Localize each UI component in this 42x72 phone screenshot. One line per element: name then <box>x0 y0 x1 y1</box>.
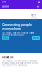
staticText: LOGO <box>2 5 9 8</box>
button[interactable]: Learn more <box>2 36 9 40</box>
button[interactable]: Menu <box>36 4 40 8</box>
button[interactable]: Contact <box>32 36 40 40</box>
staticText: ▮▮ <box>38 1 40 3</box>
staticText: Learn more <box>3 36 8 40</box>
staticText: Contact <box>32 37 39 39</box>
staticText: Sign in <box>31 14 36 16</box>
staticText: We design, build and maintain reliable n… <box>2 32 34 36</box>
staticText: 9:41 <box>2 1 6 3</box>
staticText: Connecting people everywhere <box>2 23 32 31</box>
staticText: The Telecom Infrastructure Company provi… <box>2 60 38 67</box>
staticText: About Us <box>2 56 13 59</box>
staticText: to your account <box>31 16 38 20</box>
staticText: ≡ <box>36 4 39 8</box>
